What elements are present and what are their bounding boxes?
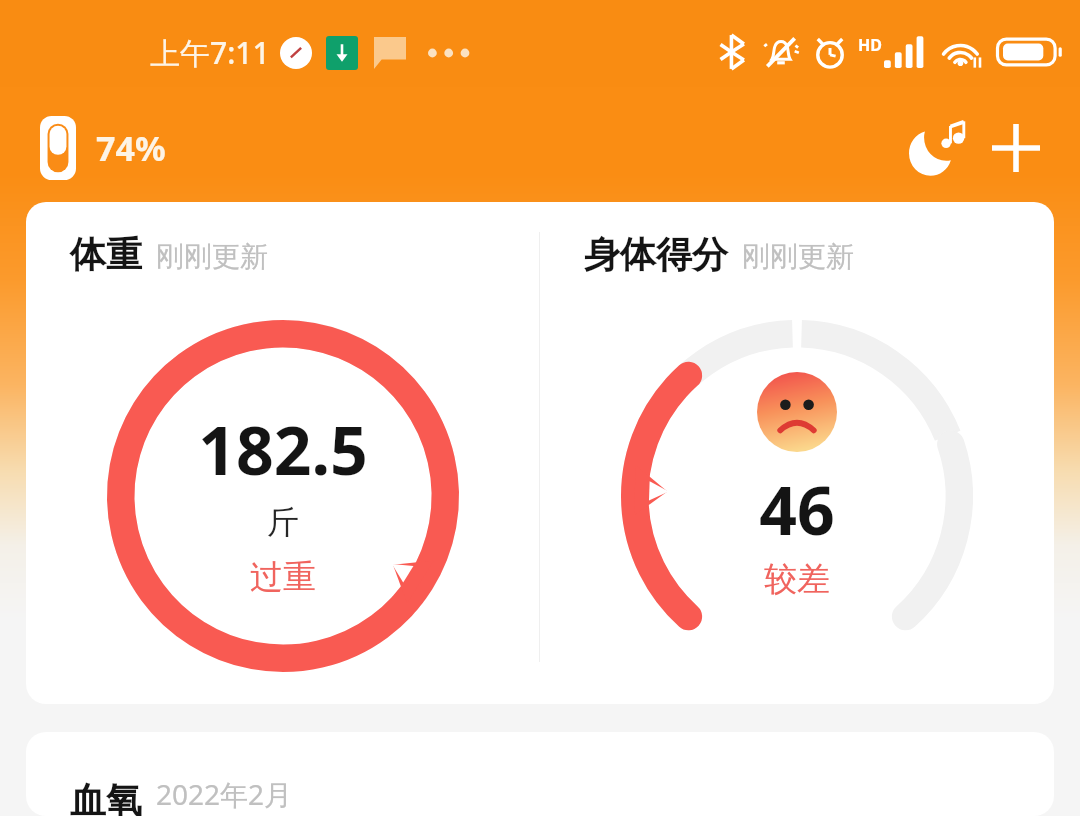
staticText: 体重 bbox=[70, 232, 142, 277]
button[interactable]: 身体得分 bbox=[540, 202, 1054, 704]
button[interactable]: 体重 bbox=[26, 202, 539, 704]
staticText: 斤 bbox=[267, 502, 299, 542]
button[interactable]: Sleep sounds bbox=[900, 110, 976, 186]
button[interactable]: 74% bbox=[40, 116, 166, 180]
staticText: 上午7:11 bbox=[150, 32, 270, 73]
staticText: 刚刚更新 bbox=[156, 239, 268, 274]
button[interactable]: 血氧 bbox=[26, 732, 1054, 816]
staticText: 2022年2月 bbox=[156, 775, 293, 813]
staticText: 身体得分 bbox=[584, 232, 728, 277]
staticText: 46 bbox=[759, 464, 835, 554]
staticText: 74% bbox=[96, 125, 166, 171]
staticText: 血氧 bbox=[70, 778, 142, 816]
staticText: 较差 bbox=[764, 558, 830, 600]
staticText: 过重 bbox=[250, 556, 316, 598]
staticText: 刚刚更新 bbox=[742, 239, 854, 274]
staticText: 182.5 bbox=[198, 404, 368, 494]
button[interactable]: Add bbox=[978, 110, 1054, 186]
staticText: HD bbox=[858, 34, 882, 56]
